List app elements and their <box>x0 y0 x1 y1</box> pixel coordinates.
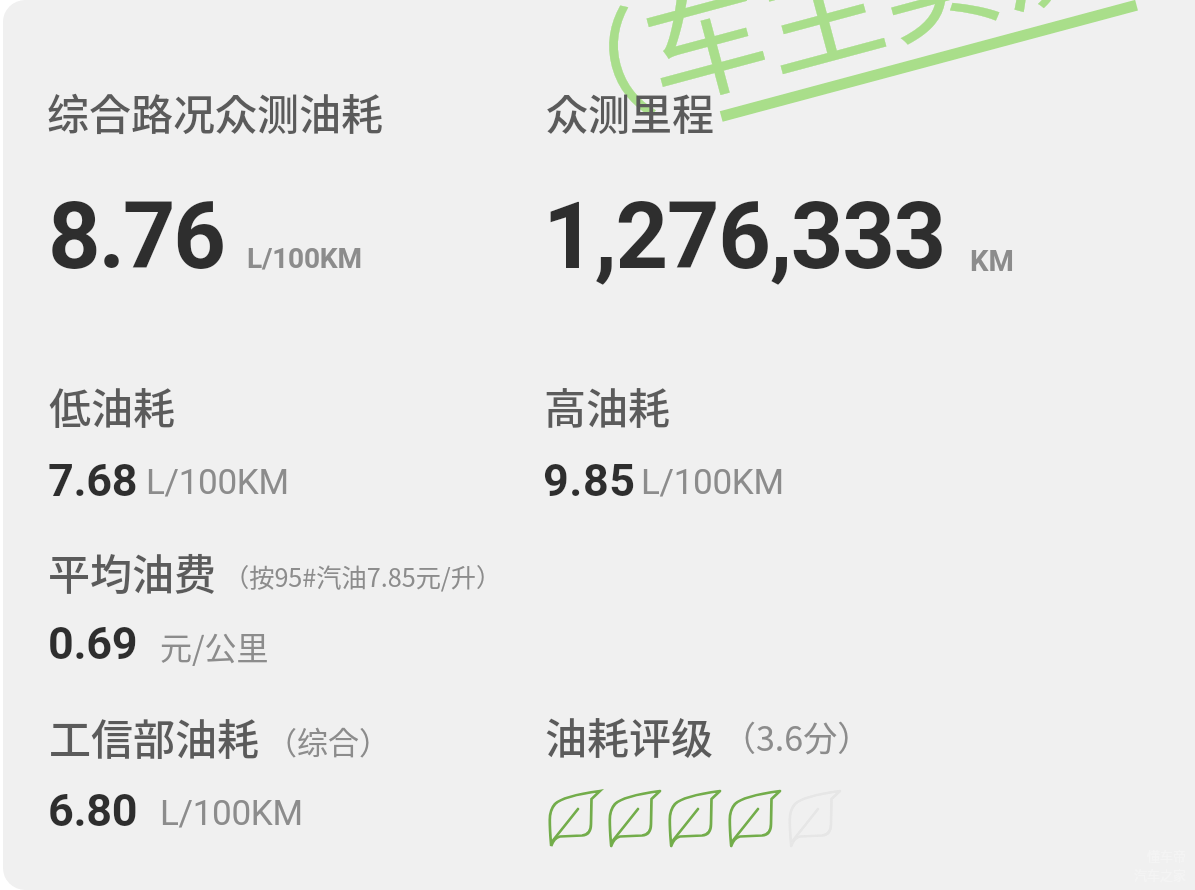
staticText: 元/公里 <box>160 623 269 669</box>
staticText: 低油耗 <box>49 375 176 436</box>
staticText: 6.80 <box>48 784 138 837</box>
staticText: 0.69 <box>48 617 138 670</box>
staticText: L/100KM <box>146 462 289 503</box>
button[interactable]: 低油耗 7.68 L/100KM <box>43 370 513 510</box>
button[interactable]: 高油耗 9.85 L/100KM <box>538 370 1008 510</box>
staticText: （综合） <box>266 718 390 763</box>
staticText: 9.85 <box>543 454 636 507</box>
staticText: L/100KM <box>247 242 362 275</box>
button[interactable]: 油耗评级 3.6 分 <box>548 789 848 847</box>
staticText: 高油耗 <box>544 375 671 436</box>
staticText: 工信部油耗 <box>49 706 260 767</box>
staticText: （按95#汽油7.85元/升） <box>224 558 502 594</box>
button[interactable]: 工信部油耗 6.80 L/100KM <box>43 700 513 840</box>
staticText: 平均油费 <box>48 541 217 602</box>
button[interactable]: （车主实测） <box>3 0 1195 890</box>
button[interactable]: 众测里程 1,276,333 KM <box>538 70 1058 300</box>
staticText: L/100KM <box>160 793 303 834</box>
staticText: 7.68 <box>48 454 138 507</box>
staticText: 众测里程 <box>546 81 715 142</box>
staticText: 油耗评级 <box>545 705 714 766</box>
staticText: （车主实测） <box>507 0 1195 166</box>
staticText: 综合路况众测油耗 <box>47 81 384 142</box>
staticText: KM <box>970 244 1014 278</box>
staticText: 1,276,333 <box>543 183 945 291</box>
button[interactable]: 平均油费 0.69 元/公里 <box>43 536 513 676</box>
staticText: L/100KM <box>641 462 784 503</box>
staticText: （3.6分） <box>722 712 872 761</box>
staticText: 8.76 <box>48 183 224 291</box>
button[interactable]: 综合路况众测油耗 8.76 L/100KM <box>43 70 513 300</box>
